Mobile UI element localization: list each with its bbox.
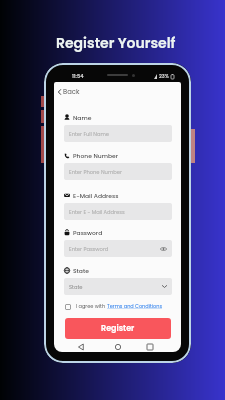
- button[interactable]: Recent apps: [144, 341, 156, 352]
- button[interactable]: Back: [75, 341, 87, 352]
- staticText: 23%: [159, 73, 170, 80]
- button[interactable]: State: [64, 278, 172, 295]
- staticText: State: [73, 267, 89, 275]
- staticText: Enter E - Mail Address: [69, 209, 125, 216]
- staticText: Back: [63, 87, 80, 97]
- button[interactable]: Agree checkbox: [65, 304, 71, 310]
- button[interactable]: Register: [65, 318, 171, 339]
- staticText: State: [69, 284, 83, 291]
- staticText: 11:54: [72, 73, 84, 80]
- button[interactable]: Enter E - Mail Address: [64, 203, 172, 220]
- staticText: Register: [101, 323, 135, 334]
- staticText: I agree with: [76, 303, 107, 310]
- staticText: Enter Full Name: [69, 131, 109, 138]
- button[interactable]: Back: [54, 86, 181, 98]
- button[interactable]: Terms and Conditions: [107, 303, 162, 310]
- button[interactable]: Enter Phone Number: [64, 163, 172, 180]
- staticText: Password: [73, 229, 103, 237]
- button[interactable]: Enter Password: [64, 240, 172, 257]
- button[interactable]: Show password: [160, 247, 167, 251]
- staticText: E-Mail Address: [73, 192, 119, 200]
- button[interactable]: Enter Full Name: [64, 125, 172, 142]
- staticText: Name: [73, 114, 92, 122]
- staticText: Enter Phone Number: [69, 169, 122, 176]
- staticText: Phone Number: [73, 152, 118, 160]
- button[interactable]: Home: [112, 341, 124, 352]
- staticText: Enter Password: [69, 246, 109, 253]
- staticText: Register Yourself: [56, 33, 176, 53]
